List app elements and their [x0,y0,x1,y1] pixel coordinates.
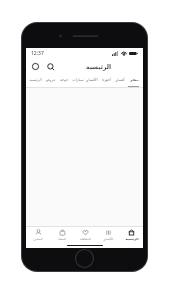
button[interactable]: حسابي [26,227,50,243]
staticText: 12:37 [31,50,44,57]
staticText: المفضلة [80,237,91,241]
staticText: السلة [58,237,66,241]
button[interactable]: أجهزة [99,74,113,85]
staticText: حسابي [33,237,43,241]
staticText: أجهزة [102,78,111,82]
button[interactable]: جوجه الفخر [57,74,71,85]
button[interactable]: أقسام [113,74,127,85]
staticText: سيارات [72,78,84,82]
button[interactable]: متجر [127,74,141,85]
staticText: الرئيسية [86,63,111,70]
staticText: الأقسام [103,237,114,241]
button[interactable]: Search [45,61,56,72]
staticText: الأقسام [86,78,98,82]
button[interactable]: الرئيسية [28,74,43,85]
staticText: عروض [45,78,56,82]
button[interactable]: الأقسام [85,74,99,85]
staticText: أقسام [115,78,125,82]
button[interactable]: المفضلة [74,227,97,243]
button[interactable]: سيارات [71,74,85,85]
staticText: جوجه الفخر [57,77,71,82]
button[interactable]: الأقسام [97,227,120,243]
staticText: متجر [130,78,139,82]
button[interactable]: عروض [43,74,57,85]
staticText: الرئيسية [125,237,139,241]
button[interactable]: السلة [50,227,74,243]
staticText: الرئيسية [29,78,42,82]
button[interactable]: Cart [30,61,41,72]
button[interactable]: الرئيسية [120,227,143,243]
